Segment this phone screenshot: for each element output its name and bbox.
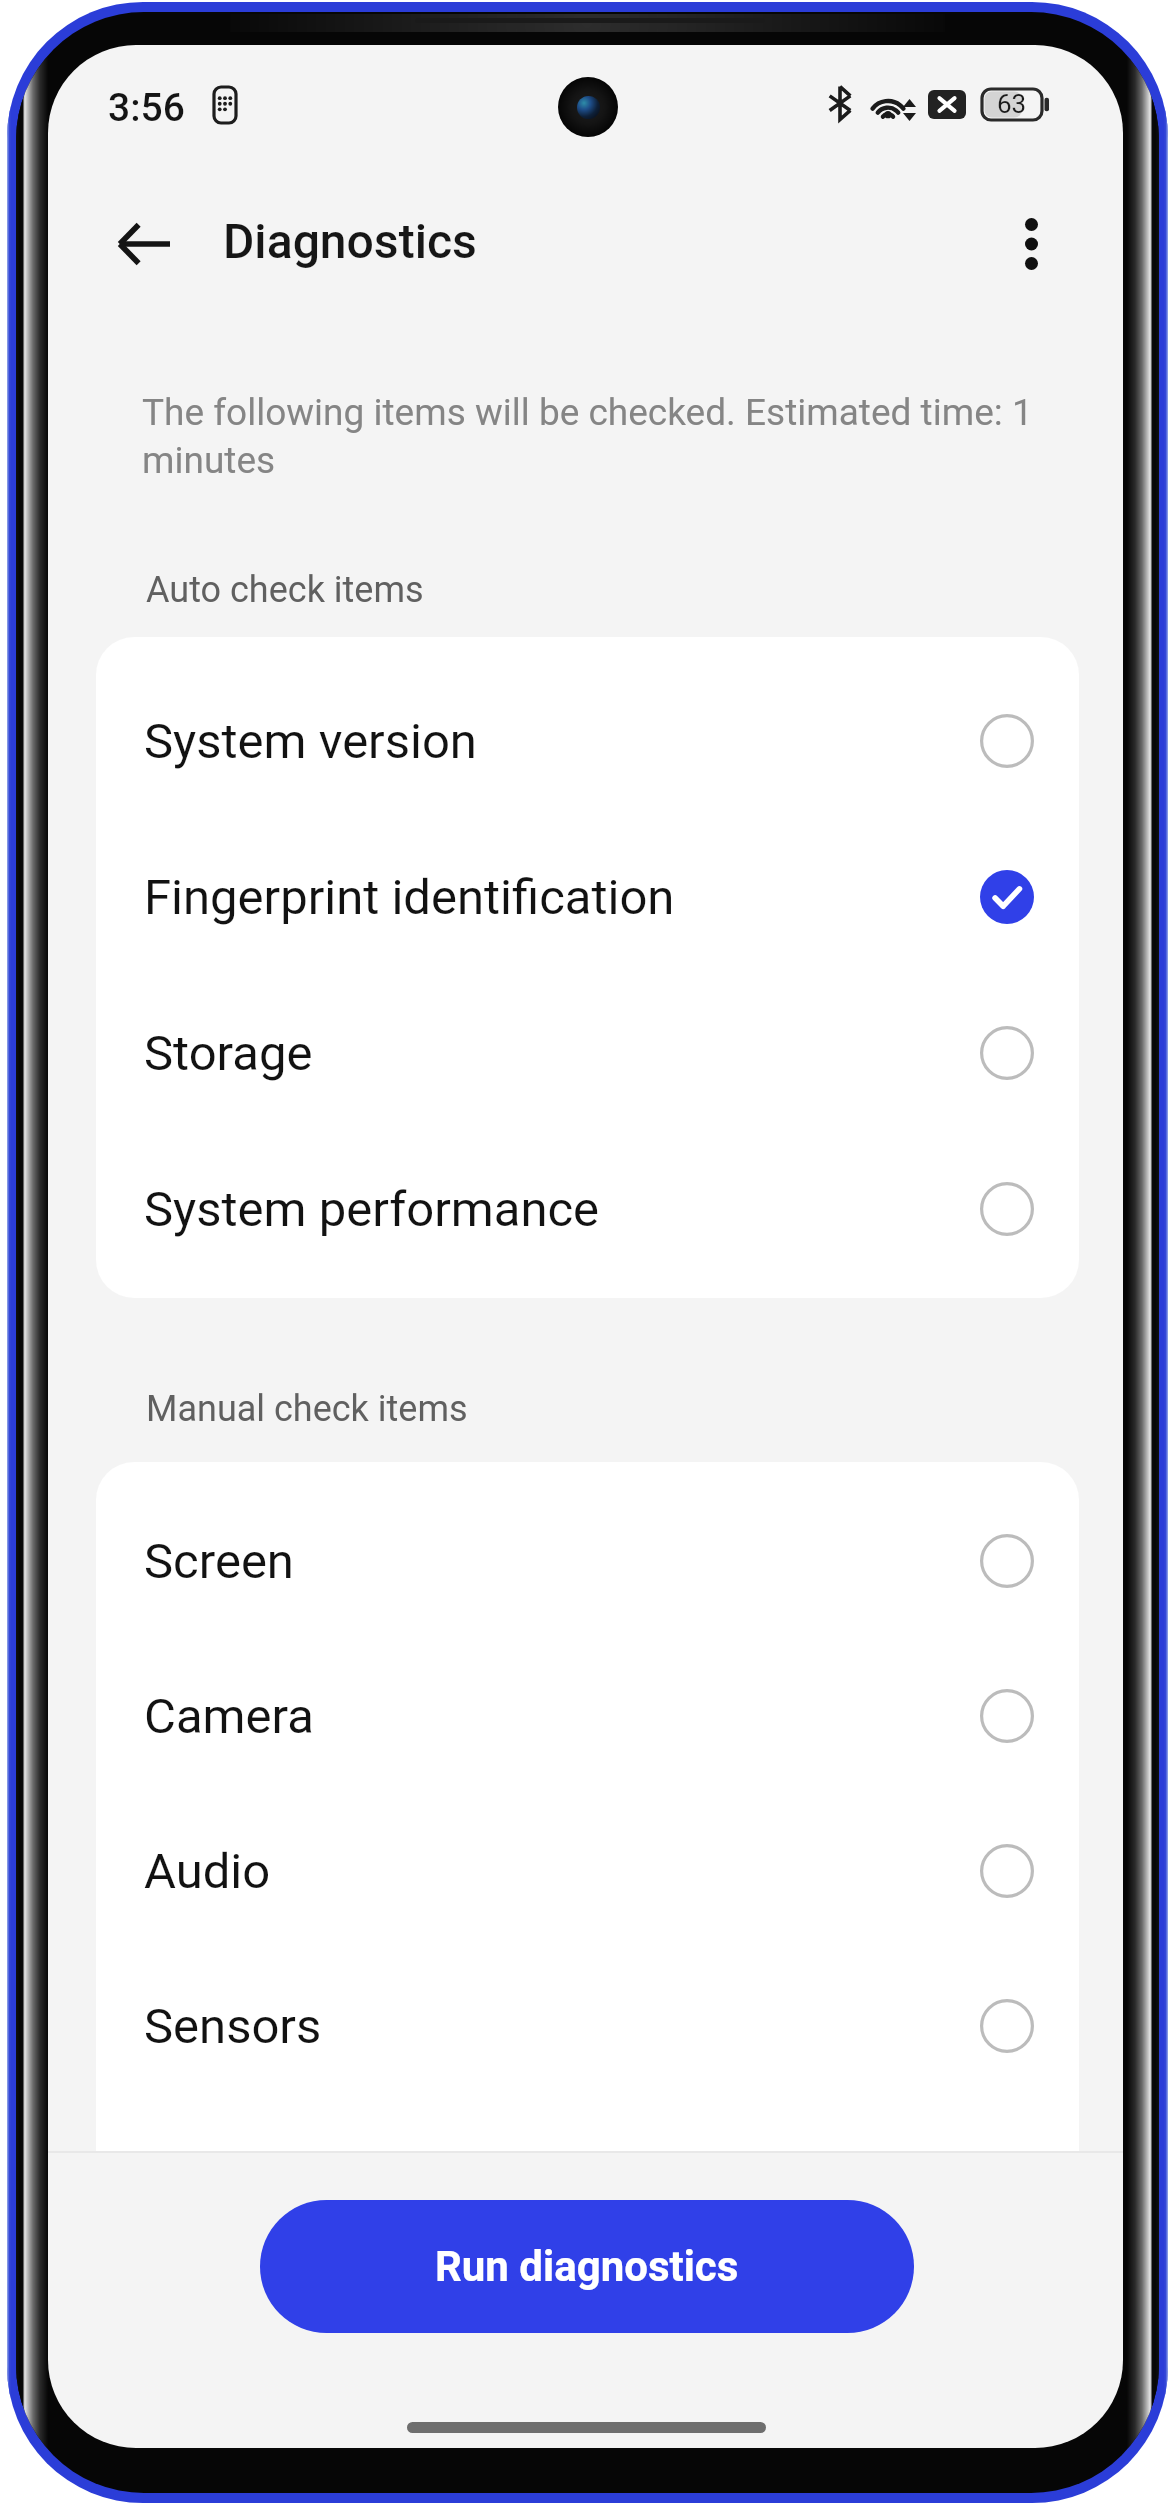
staticText: Camera (144, 1688, 314, 1745)
staticText: 63 (997, 89, 1027, 119)
button[interactable]: System performance (96, 1131, 1079, 1287)
staticText: The following items will be checked. Est… (142, 391, 1077, 482)
staticText: Auto check items (146, 569, 424, 611)
staticText: Diagnostics (223, 213, 477, 269)
button[interactable]: Run diagnostics (260, 2200, 914, 2333)
staticText: Sensors (144, 1998, 322, 2055)
button[interactable]: Camera (96, 1638, 1079, 1794)
button[interactable]: System version (96, 663, 1079, 819)
button[interactable]: Screen (96, 1483, 1079, 1639)
staticText: 3:56 (108, 85, 185, 131)
staticText: Manual check items (146, 1388, 468, 1430)
button[interactable]: Fingerprint identification (96, 819, 1079, 975)
staticText: System version (144, 713, 477, 770)
staticText: Run diagnostics (435, 2242, 739, 2291)
staticText: Fingerprint identification (144, 869, 675, 926)
button[interactable]: Sensors (96, 1948, 1079, 2104)
button[interactable]: More options (983, 196, 1079, 292)
staticText: Storage (144, 1025, 313, 1082)
button[interactable]: Back (96, 196, 192, 292)
staticText: Audio (144, 1843, 271, 1900)
staticText: Screen (144, 1533, 294, 1590)
button[interactable]: Storage (96, 975, 1079, 1131)
staticText: System performance (144, 1181, 600, 1238)
button[interactable]: Audio (96, 1793, 1079, 1949)
